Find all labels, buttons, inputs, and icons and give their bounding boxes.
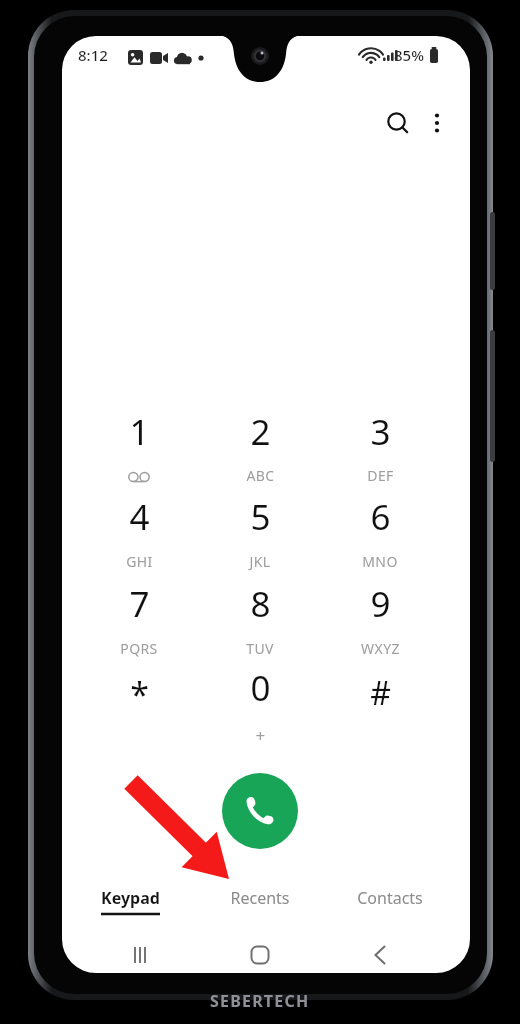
button[interactable]: 9 — [324, 576, 436, 656]
staticText: 5 — [250, 493, 271, 541]
staticText: Recents — [230, 887, 290, 909]
staticText: 1 — [129, 408, 150, 456]
staticText: MNO — [362, 552, 398, 571]
button[interactable]: Contacts — [328, 880, 452, 924]
button[interactable]: 3 — [324, 404, 436, 484]
button[interactable]: 7 — [83, 576, 195, 656]
staticText: 85% — [394, 45, 424, 65]
button[interactable]: * — [83, 660, 195, 740]
button[interactable]: Keypad — [68, 880, 192, 924]
button[interactable]: 6 — [324, 489, 436, 569]
button[interactable]: 1 — [83, 404, 195, 484]
staticText: 9 — [370, 580, 391, 628]
button[interactable]: Recent apps — [110, 932, 170, 978]
staticText: Contacts — [357, 887, 423, 909]
staticText: JKL — [249, 552, 271, 571]
staticText: 7 — [129, 580, 150, 628]
button[interactable]: 0 — [204, 660, 316, 740]
staticText: 8 — [250, 580, 271, 628]
staticText: Keypad — [101, 887, 160, 909]
staticText: 4 — [129, 493, 150, 541]
staticText: # — [370, 671, 391, 715]
button[interactable]: 4 — [83, 489, 195, 569]
button[interactable]: 2 — [204, 404, 316, 484]
button[interactable]: 8 — [204, 576, 316, 656]
button[interactable]: Recents — [198, 880, 322, 924]
staticText: 8:12 — [78, 45, 108, 65]
button[interactable]: Search — [375, 100, 421, 146]
staticText: PQRS — [120, 639, 158, 658]
staticText: 2 — [250, 408, 271, 456]
staticText: 6 — [370, 493, 391, 541]
staticText: 0 — [250, 664, 271, 712]
button[interactable]: More options — [414, 100, 460, 146]
staticText: TUV — [246, 639, 274, 658]
button[interactable]: # — [324, 660, 436, 740]
button[interactable]: Back — [350, 932, 410, 978]
staticText: ABC — [246, 466, 275, 485]
staticText: + — [255, 724, 266, 747]
staticText: SEBERTECH — [210, 990, 310, 1012]
staticText: GHI — [126, 552, 153, 571]
button[interactable]: Home — [230, 932, 290, 978]
button[interactable]: 5 — [204, 489, 316, 569]
staticText: DEF — [367, 466, 394, 485]
staticText: * — [130, 671, 149, 717]
button[interactable]: Call — [222, 773, 298, 849]
staticText: 3 — [370, 408, 391, 456]
staticText: WXYZ — [361, 639, 400, 658]
